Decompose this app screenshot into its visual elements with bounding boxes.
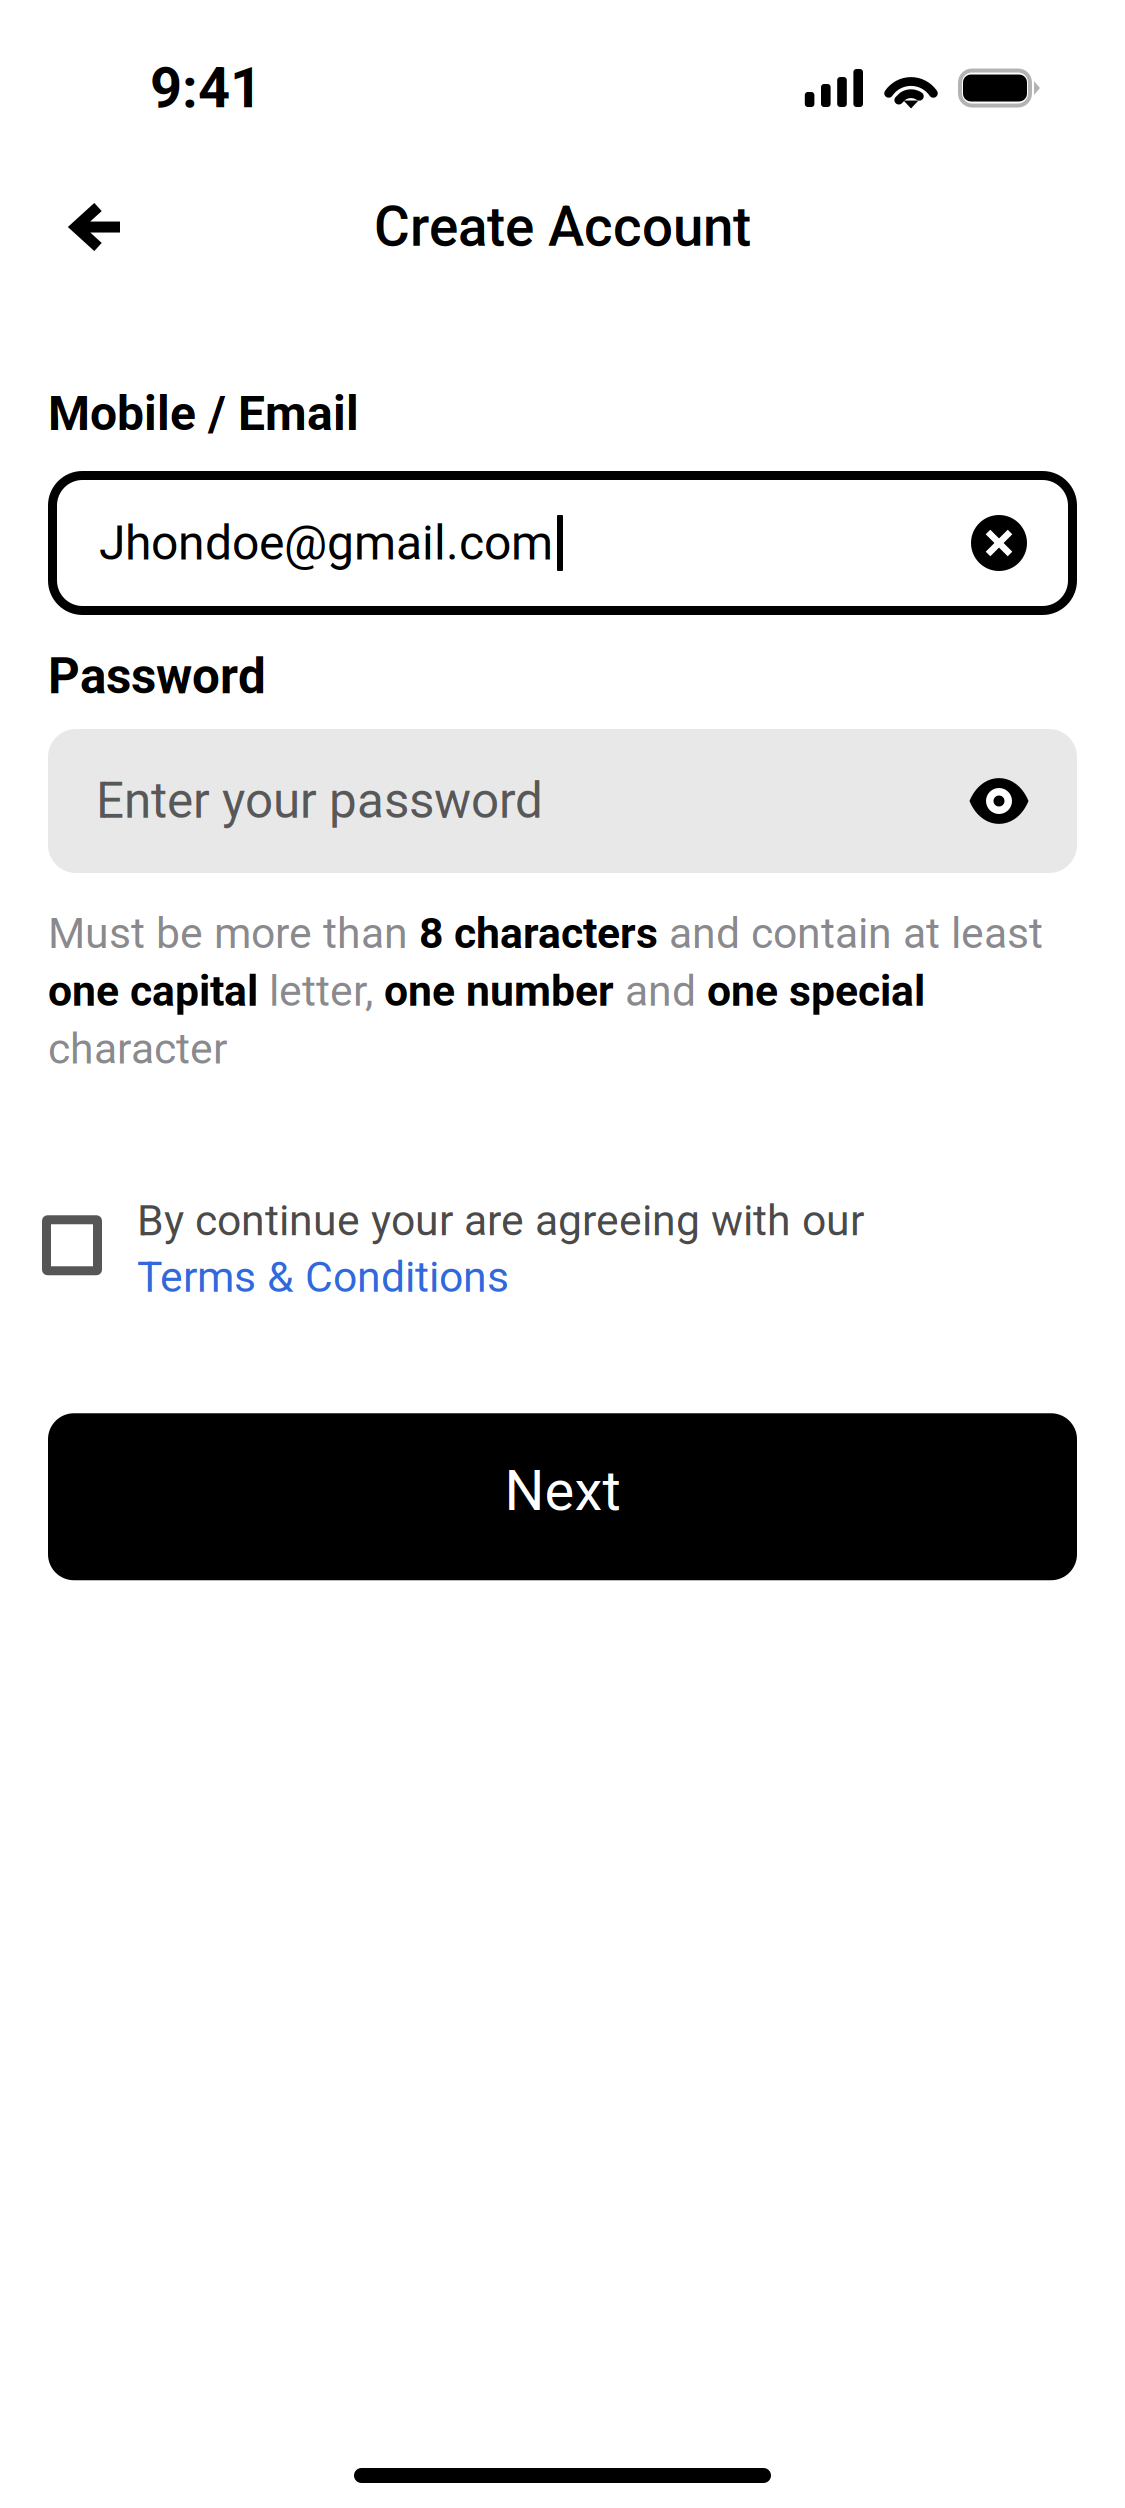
button[interactable]: Next	[48, 1413, 1077, 1580]
staticText: Terms & Conditions	[137, 1252, 509, 1302]
button[interactable]: Clear text	[971, 515, 1027, 571]
staticText: Password	[48, 648, 266, 705]
staticText: Mobile / Email	[48, 385, 359, 442]
staticText: Enter your password	[96, 772, 543, 830]
button[interactable]: Show password	[969, 775, 1029, 826]
staticText: Must be more than 8 characters and conta…	[48, 909, 1043, 1073]
button[interactable]: Agree to Terms and Conditions	[48, 1189, 137, 1275]
staticText: Jhondoe@gmail.com	[99, 515, 553, 571]
staticText: Create Account	[374, 195, 751, 259]
button[interactable]: Terms & Conditions	[137, 1252, 509, 1302]
staticText: 9:41	[150, 55, 262, 121]
staticText: Next	[504, 1458, 620, 1523]
staticText: By continue your are agreeing with our	[137, 1196, 864, 1246]
button[interactable]: Back	[43, 186, 149, 268]
